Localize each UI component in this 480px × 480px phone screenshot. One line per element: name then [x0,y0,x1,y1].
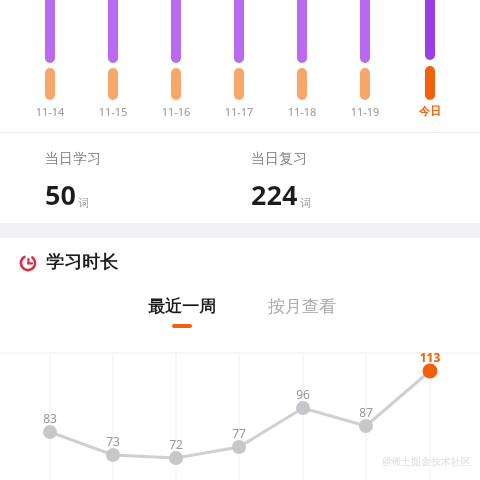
button[interactable]: 11-14 [20,104,80,119]
staticText: 73 [89,433,137,449]
staticText: 11-17 [209,104,269,119]
button[interactable]: 11-18 [272,104,332,119]
staticText: 50 [45,176,76,213]
staticText: 词 [300,196,311,210]
button[interactable]: 11-15 [83,104,143,119]
button[interactable]: 11-17 [209,104,269,119]
staticText: 87 [342,404,390,420]
staticText: 当日复习 [251,150,307,168]
staticText: 77 [215,425,263,441]
button[interactable]: 83 [0,348,480,480]
staticText: 224 [251,176,298,213]
staticText: 词 [78,196,89,210]
button[interactable]: 当日复习 [251,150,311,213]
staticText: 11-19 [335,104,395,119]
staticText: 按月查看 [260,296,344,317]
button[interactable]: 按月查看 [260,296,344,317]
button[interactable]: 今日 [400,104,460,118]
staticText: 当日学习 [45,150,101,168]
staticText: 113 [406,349,454,365]
button[interactable]: Study duration [18,251,118,274]
staticText: @稀土掘金技术社区 [382,454,471,468]
button[interactable]: 最近一周 [140,296,224,328]
button[interactable]: 11-16 [146,104,206,119]
staticText: 最近一周 [148,296,216,317]
staticText: 11-14 [20,104,80,119]
staticText: 学习时长 [46,251,118,274]
staticText: 11-15 [83,104,143,119]
staticText: 今日 [400,104,460,118]
staticText: 72 [152,436,200,452]
staticText: 11-16 [146,104,206,119]
staticText: 96 [279,386,327,402]
button[interactable]: 11-19 [335,104,395,119]
staticText: 83 [26,410,74,426]
staticText: 11-18 [272,104,332,119]
button[interactable]: 当日学习 [45,150,101,213]
other: Study duration [18,253,38,273]
